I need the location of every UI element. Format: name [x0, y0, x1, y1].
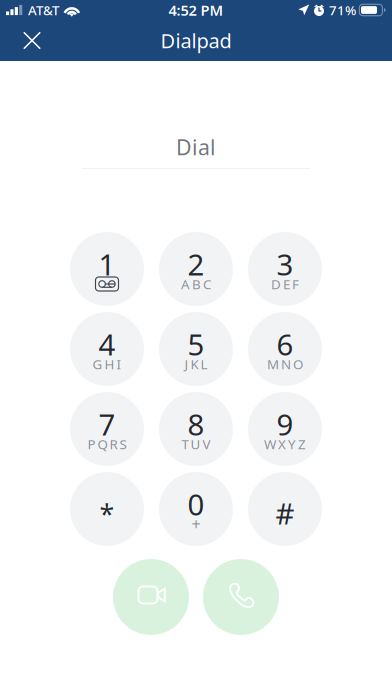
staticText: 71% [329, 1, 356, 19]
staticText: 4 [98, 324, 115, 363]
staticText: 3 [276, 244, 293, 283]
staticText: W X Y Z [264, 435, 306, 453]
button[interactable]: 4 [70, 312, 144, 386]
button[interactable]: Close [0, 20, 48, 61]
staticText: 1 [98, 244, 115, 283]
button[interactable]: 5 [159, 312, 233, 386]
button[interactable]: 0 [159, 472, 233, 546]
staticText: 0 [187, 484, 204, 523]
staticText: Dial [176, 133, 216, 161]
button[interactable]: # [248, 472, 322, 546]
staticText: # [275, 493, 294, 532]
button[interactable]: Call [203, 559, 279, 635]
button[interactable]: 3 [248, 232, 322, 306]
staticText: + [191, 513, 200, 535]
staticText: 8 [187, 404, 204, 443]
staticText: T U V [181, 435, 210, 453]
button[interactable]: * [70, 472, 144, 546]
button[interactable]: Video call [113, 559, 189, 635]
button[interactable]: 9 [248, 392, 322, 466]
staticText: Dialpad [160, 27, 231, 54]
button[interactable]: 1 [70, 232, 144, 306]
staticText: 6 [276, 324, 293, 363]
staticText: M N O [267, 355, 303, 373]
staticText: J K L [184, 355, 207, 373]
staticText: A B C [181, 275, 211, 293]
button[interactable]: 7 [70, 392, 144, 466]
staticText: AT&T [28, 1, 59, 19]
staticText: 7 [98, 404, 115, 443]
staticText: 4:52 PM [168, 0, 223, 20]
staticText: 9 [276, 404, 293, 443]
staticText: 2 [187, 244, 204, 283]
button[interactable]: 6 [248, 312, 322, 386]
button[interactable]: 8 [159, 392, 233, 466]
staticText: P Q R S [87, 435, 126, 453]
staticText: D E F [271, 275, 299, 293]
staticText: 5 [187, 324, 204, 363]
button[interactable]: 2 [159, 232, 233, 306]
staticText: G H I [92, 355, 121, 373]
staticText: * [99, 496, 114, 532]
